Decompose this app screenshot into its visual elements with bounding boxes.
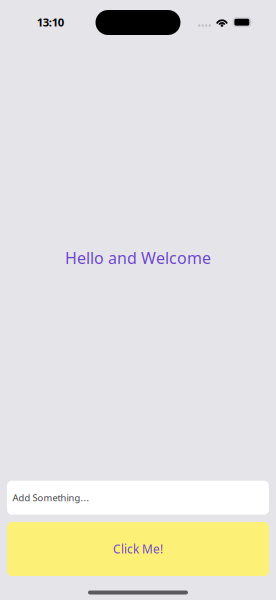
button[interactable]: Add Something... xyxy=(7,481,269,515)
button[interactable]: Click Me! xyxy=(7,522,269,576)
staticText: 13:10 xyxy=(37,14,64,30)
staticText: Click Me! xyxy=(113,541,163,557)
staticText: Hello and Welcome xyxy=(65,247,211,269)
staticText: Add Something... xyxy=(12,491,89,504)
